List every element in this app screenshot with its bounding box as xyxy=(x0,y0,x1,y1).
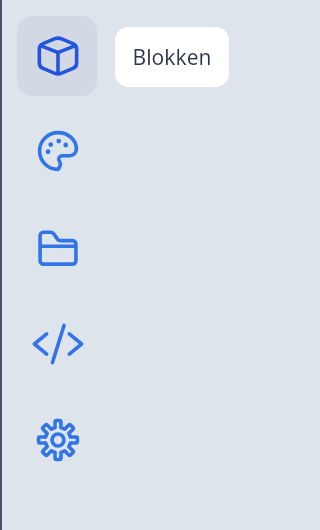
button[interactable]: Bestanden xyxy=(28,217,88,277)
staticText: Blokken xyxy=(132,43,212,72)
button[interactable]: Code xyxy=(28,314,88,374)
button[interactable]: Instellingen xyxy=(28,410,88,470)
button[interactable]: Blokken xyxy=(17,16,97,96)
button[interactable]: Blokken xyxy=(115,27,229,87)
button[interactable]: Blokken xyxy=(28,26,88,86)
button[interactable]: Thema xyxy=(28,121,88,181)
